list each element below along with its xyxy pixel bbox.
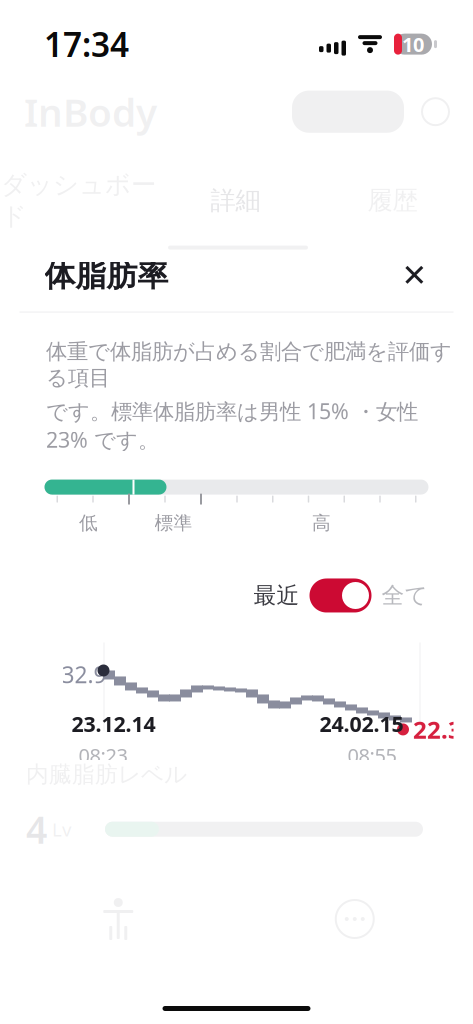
staticText: 08:55 bbox=[347, 742, 396, 768]
staticText: 4 bbox=[26, 804, 47, 854]
staticText: Lv bbox=[47, 817, 71, 842]
staticText: 10 bbox=[402, 31, 424, 57]
staticText: 腹部肥満分析 bbox=[22, 671, 196, 707]
staticText: 08:23 bbox=[78, 742, 127, 768]
button[interactable]: 期間切り替え 最近 / 全て bbox=[253, 578, 427, 612]
staticText: 24.02.15 bbox=[319, 710, 403, 738]
staticText: 最近 bbox=[253, 582, 299, 609]
button[interactable]: その他 bbox=[333, 897, 377, 941]
staticText: 高 bbox=[312, 512, 331, 534]
staticText: 32.9 bbox=[61, 659, 106, 690]
staticText: ダッシュボード bbox=[1, 169, 156, 231]
button[interactable]: 閉じる bbox=[392, 253, 436, 297]
staticText: 骨格筋量 bbox=[22, 268, 114, 295]
staticText: 標準 bbox=[154, 512, 192, 534]
staticText: 低 bbox=[79, 512, 98, 534]
staticText: 全て bbox=[381, 582, 427, 609]
staticText: 履歴 bbox=[367, 185, 417, 216]
staticText: 体脂肪率 bbox=[44, 257, 168, 294]
staticText: です。標準体脂肪率は男性 15% ・女性 23% です。 bbox=[46, 397, 418, 454]
staticText: ✕ bbox=[401, 258, 427, 293]
staticText: 体脂肪量 bbox=[22, 321, 114, 349]
staticText: 23.12.14 bbox=[71, 710, 155, 738]
staticText: 内臓脂肪レベル bbox=[26, 761, 187, 788]
button[interactable]: からだ bbox=[96, 896, 140, 942]
staticText: 体重で体脂肪が占める割合で肥満を評価する項目 bbox=[46, 338, 452, 391]
staticText: 22.3 bbox=[413, 713, 462, 745]
staticText: 17:34 bbox=[44, 22, 129, 66]
staticText: 詳細 bbox=[210, 185, 260, 216]
staticText: InBody bbox=[24, 86, 157, 137]
